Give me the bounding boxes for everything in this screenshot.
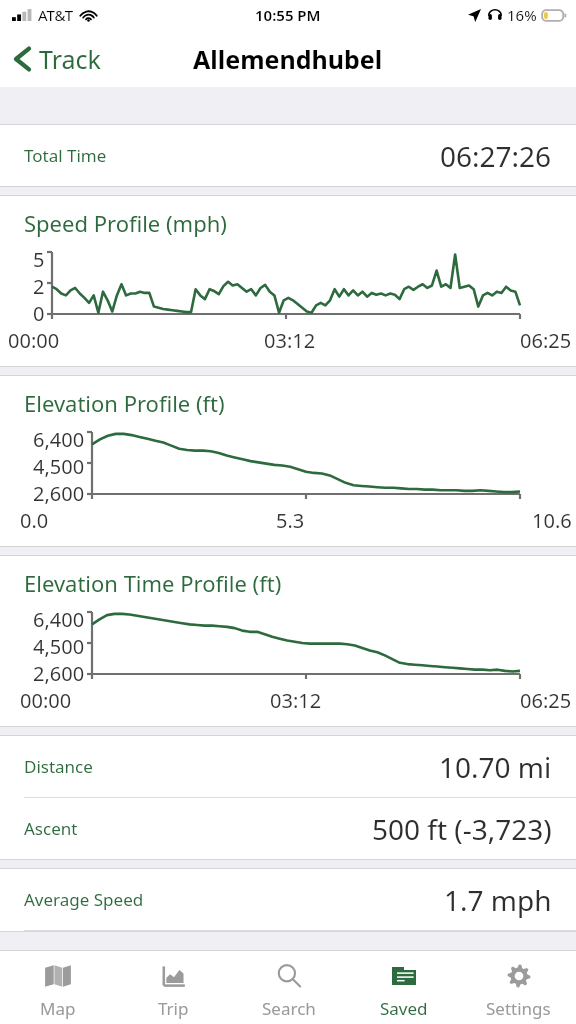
staticText: 6,400: [33, 426, 85, 453]
staticText: 10.6: [532, 507, 572, 534]
staticText: 03:12: [264, 327, 316, 354]
staticText: Saved: [380, 997, 428, 1020]
staticText: 06:27:26: [440, 137, 552, 175]
staticText: 10:55 PM: [255, 5, 321, 25]
button[interactable]: Average Speed: [0, 869, 576, 931]
button[interactable]: Total Time: [0, 125, 576, 186]
button[interactable]: Saved: [346, 951, 461, 1024]
staticText: 00:00: [20, 687, 72, 714]
button[interactable]: Elevation Time Profile (ft): [0, 556, 576, 726]
button[interactable]: Distance: [0, 736, 576, 798]
staticText: 03:12: [270, 687, 322, 714]
staticText: 2,600: [33, 480, 85, 507]
staticText: 00:00: [8, 327, 60, 354]
staticText: Total Time: [24, 144, 107, 167]
staticText: 5.3: [276, 507, 305, 534]
staticText: 500 ft (-3,723): [372, 810, 552, 848]
button[interactable]: Trip: [116, 951, 231, 1024]
staticText: Elevation Profile (ft): [24, 388, 225, 418]
staticText: 5: [33, 246, 45, 273]
button[interactable]: Speed Profile (mph): [0, 196, 576, 366]
button[interactable]: Track: [14, 42, 111, 76]
staticText: 2: [33, 273, 45, 300]
staticText: 0.0: [20, 507, 49, 534]
button[interactable]: Map: [0, 951, 116, 1024]
staticText: Map: [40, 997, 76, 1020]
staticText: Track: [39, 42, 101, 76]
staticText: Allemendhubel: [193, 42, 383, 76]
staticText: 06:25: [520, 687, 572, 714]
staticText: Trip: [158, 997, 189, 1020]
staticText: AT&T: [38, 5, 73, 25]
staticText: 4,500: [33, 453, 85, 480]
button[interactable]: Elevation Profile (ft): [0, 376, 576, 546]
staticText: Elevation Time Profile (ft): [24, 568, 282, 598]
staticText: Ascent: [24, 817, 78, 840]
staticText: 6,400: [33, 606, 85, 633]
staticText: 1.7 mph: [444, 881, 552, 919]
button[interactable]: Search: [231, 951, 346, 1024]
staticText: Speed Profile (mph): [24, 208, 227, 238]
button[interactable]: Settings: [461, 951, 576, 1024]
staticText: 2,600: [33, 660, 85, 687]
button[interactable]: Ascent: [0, 798, 576, 859]
staticText: 0: [33, 300, 45, 327]
staticText: 16%: [507, 5, 537, 25]
staticText: Settings: [486, 997, 551, 1020]
staticText: Average Speed: [24, 888, 144, 911]
staticText: 4,500: [33, 633, 85, 660]
staticText: Search: [262, 997, 316, 1020]
staticText: Distance: [24, 755, 93, 778]
staticText: 10.70 mi: [439, 748, 552, 786]
staticText: 06:25: [520, 327, 572, 354]
